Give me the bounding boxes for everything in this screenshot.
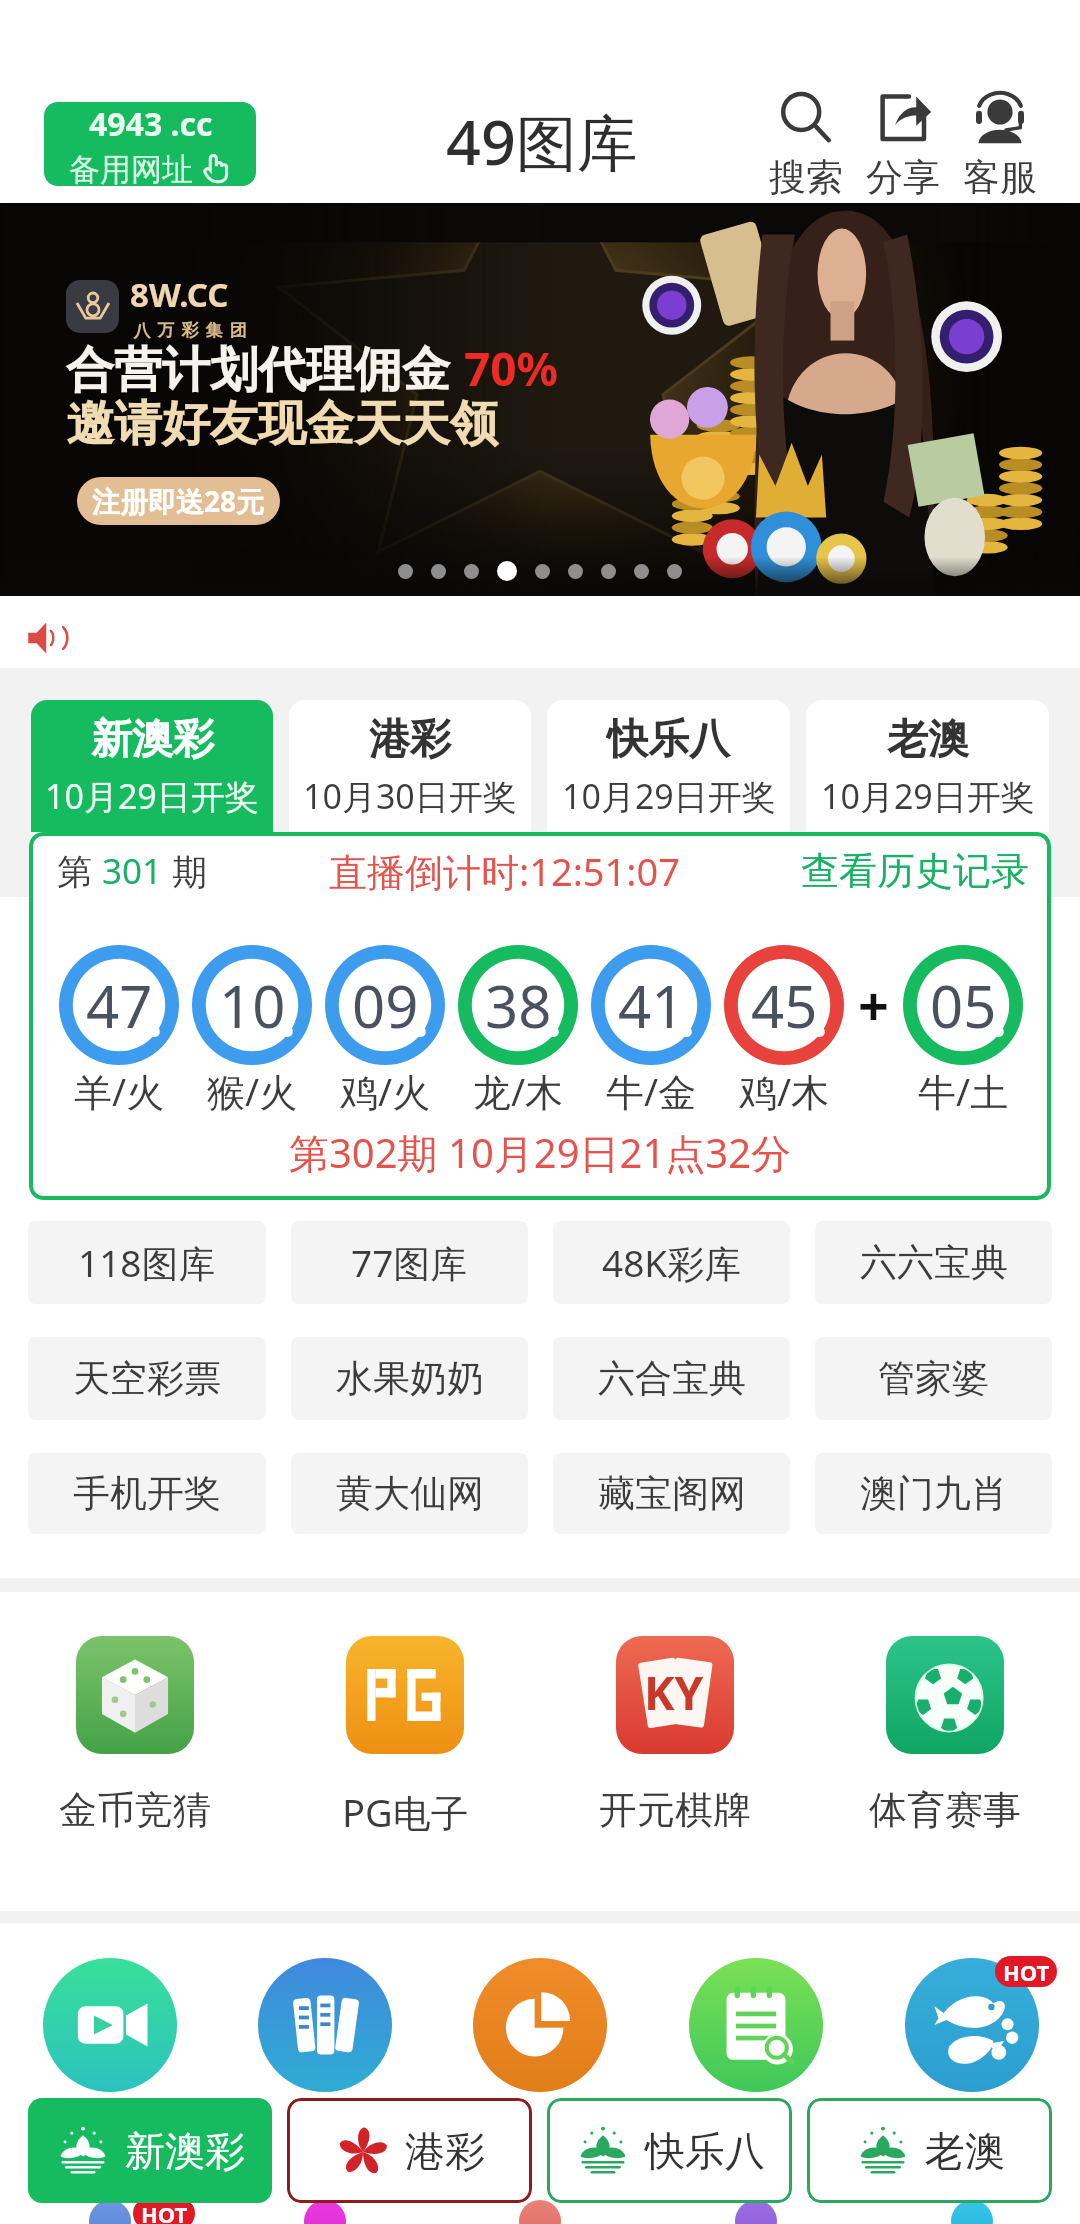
staticText: 10月30日开奖 (303, 773, 517, 819)
staticText: 天空彩票 (73, 1355, 221, 1402)
button[interactable]: 118图库 (28, 1221, 266, 1304)
staticText: KY (644, 1661, 704, 1724)
staticText: 8W.CC (130, 272, 229, 317)
button[interactable]: 六六宝典 (815, 1221, 1052, 1304)
staticText: 牛/金 (606, 1065, 697, 1117)
button[interactable]: Forum (473, 2200, 607, 2224)
staticText: + (858, 968, 889, 1042)
button[interactable]: 查看历史记录 (801, 847, 1029, 895)
staticText: 金币竞猜 (59, 1786, 211, 1834)
staticText: 老澳 (925, 2126, 1005, 2176)
button[interactable]: 体育赛事 (810, 1636, 1080, 1834)
button[interactable]: 快乐八 (547, 2098, 792, 2203)
staticText: 合营计划代理佣金 (66, 340, 450, 400)
staticText: HOT (1003, 1957, 1050, 1987)
button[interactable]: Search (757, 88, 854, 201)
staticText: 注册即送28元 (92, 482, 265, 520)
button[interactable]: 老澳 (807, 2098, 1052, 2203)
staticText: 70% (464, 337, 559, 400)
staticText: 邀请好友现金天天领 (66, 394, 498, 454)
button[interactable]: 澳门九肖 (815, 1453, 1052, 1534)
staticText: 直播倒计时:12:51:07 (329, 845, 680, 897)
button[interactable]: 金币竞猜 (0, 1636, 270, 1834)
staticText: 牛/土 (918, 1065, 1009, 1117)
button[interactable]: 黄大仙网 (291, 1453, 528, 1534)
button[interactable]: 港彩 (289, 700, 531, 832)
staticText: 47 (86, 966, 153, 1045)
staticText: 301 (102, 847, 163, 895)
button[interactable]: Customer service (951, 88, 1048, 201)
staticText: 48K彩库 (602, 1237, 742, 1288)
button[interactable]: PG电子 (270, 1636, 540, 1838)
staticText: 10月29日开奖 (562, 773, 776, 819)
staticText: 新澳彩 (91, 714, 214, 766)
staticText: 快乐八 (645, 2126, 765, 2176)
staticText: 118图库 (78, 1237, 216, 1288)
button[interactable]: 藏宝阁网 (553, 1453, 790, 1534)
button[interactable]: KY (540, 1636, 810, 1834)
staticText: 六六宝典 (860, 1239, 1008, 1286)
staticText: HOT (141, 2199, 188, 2224)
staticText: 38 (485, 966, 552, 1045)
staticText: 体育赛事 (869, 1786, 1021, 1834)
staticText: PG电子 (342, 1786, 469, 1838)
staticText: 鸡/木 (739, 1065, 830, 1117)
button[interactable]: Tools (689, 2200, 823, 2224)
staticText: 藏宝阁网 (598, 1470, 746, 1517)
button[interactable]: 77图库 (291, 1221, 528, 1304)
button[interactable]: Fish (905, 1958, 1039, 2092)
button[interactable]: 手机开奖 (28, 1453, 266, 1534)
button[interactable]: 港彩 (287, 2098, 532, 2203)
staticText: 第302期 10月29日21点32分 (29, 1125, 1051, 1180)
staticText: 搜索 (769, 154, 843, 201)
button[interactable]: Share (854, 88, 951, 201)
staticText: 客服 (963, 154, 1037, 201)
button[interactable]: Video (43, 1958, 177, 2092)
staticText: 港彩 (369, 714, 451, 766)
button[interactable]: 4943 .cc (44, 102, 256, 186)
staticText: 第 (57, 847, 102, 895)
staticText: 开元棋牌 (599, 1786, 751, 1834)
staticText: 鸡/火 (340, 1065, 431, 1117)
button[interactable]: 新澳彩 (31, 700, 273, 832)
staticText: 黄大仙网 (336, 1470, 484, 1517)
staticText: 八万彩集团 (130, 320, 250, 341)
button[interactable]: 老澳 (806, 700, 1049, 832)
staticText: 猴/火 (207, 1065, 298, 1117)
staticText: 澳门九肖 (860, 1470, 1008, 1517)
button[interactable]: Lottery (43, 2200, 177, 2224)
staticText: 4943 .cc (89, 102, 213, 146)
staticText: 快乐八 (607, 714, 730, 766)
staticText: 期 (163, 847, 208, 895)
staticText: 分享 (866, 154, 940, 201)
staticText: 新澳彩 (125, 2126, 245, 2176)
button[interactable]: Chart (473, 1958, 607, 2092)
staticText: 管家婆 (878, 1355, 989, 1402)
button[interactable]: Trend (258, 2200, 392, 2224)
staticText: 10 (219, 966, 286, 1045)
staticText: 10月29日开奖 (45, 773, 259, 819)
button[interactable]: 天空彩票 (28, 1337, 266, 1420)
button[interactable]: 新澳彩 (28, 2098, 272, 2203)
staticText: 05 (930, 966, 997, 1045)
button[interactable]: 管家婆 (815, 1337, 1052, 1420)
button[interactable]: Notes (689, 1958, 823, 2092)
staticText: 龙/木 (473, 1065, 564, 1117)
button[interactable]: 快乐八 (547, 700, 790, 832)
staticText: 10月29日开奖 (821, 773, 1035, 819)
staticText: 水果奶奶 (336, 1355, 484, 1402)
button[interactable]: 水果奶奶 (291, 1337, 528, 1420)
button[interactable]: 注册即送28元 (77, 477, 280, 525)
staticText: 老澳 (887, 714, 969, 766)
staticText: 09 (352, 966, 419, 1045)
staticText: 备用网址 (69, 150, 193, 186)
staticText: 77图库 (351, 1237, 468, 1288)
button[interactable]: 48K彩库 (553, 1221, 790, 1304)
button[interactable]: Books (258, 1958, 392, 2092)
staticText: 六合宝典 (598, 1355, 746, 1402)
button[interactable]: More (905, 2200, 1039, 2224)
staticText: 羊/火 (74, 1065, 165, 1117)
staticText: 41 (618, 966, 685, 1045)
staticText: 49图库 (446, 100, 638, 183)
button[interactable]: 六合宝典 (553, 1337, 790, 1420)
